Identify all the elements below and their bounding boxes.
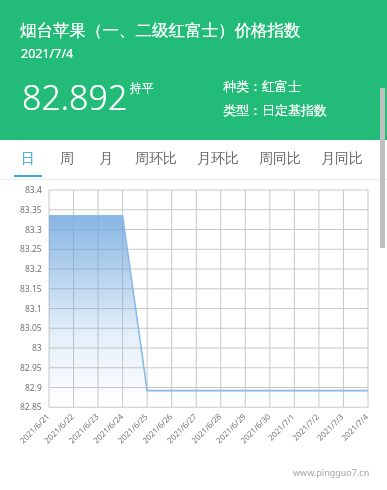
button[interactable]: 月 xyxy=(86,140,125,180)
button[interactable]: 周环比 xyxy=(125,140,187,180)
staticText: 月同比 xyxy=(321,150,363,168)
staticText: 82.892 xyxy=(22,74,128,120)
staticText: 月环比 xyxy=(197,150,239,168)
button[interactable]: 周 xyxy=(47,140,86,180)
staticText: 类型：日定基指数 xyxy=(223,102,327,118)
staticText: 2021/7/4 xyxy=(21,45,74,62)
staticText: 周同比 xyxy=(259,150,301,168)
staticText: 持平 xyxy=(130,80,154,95)
staticText: 烟台苹果（一、二级红富士）价格指数 xyxy=(20,20,301,41)
staticText: 月 xyxy=(99,150,113,168)
staticText: 周环比 xyxy=(135,150,177,168)
button[interactable]: 周同比 xyxy=(249,140,311,180)
button[interactable]: 日 xyxy=(8,140,47,180)
staticText: 周 xyxy=(60,150,74,168)
button[interactable]: 月环比 xyxy=(187,140,249,180)
staticText: 日 xyxy=(21,150,35,168)
button[interactable]: 月同比 xyxy=(311,140,373,180)
staticText: 种类：红富士 xyxy=(223,78,301,94)
